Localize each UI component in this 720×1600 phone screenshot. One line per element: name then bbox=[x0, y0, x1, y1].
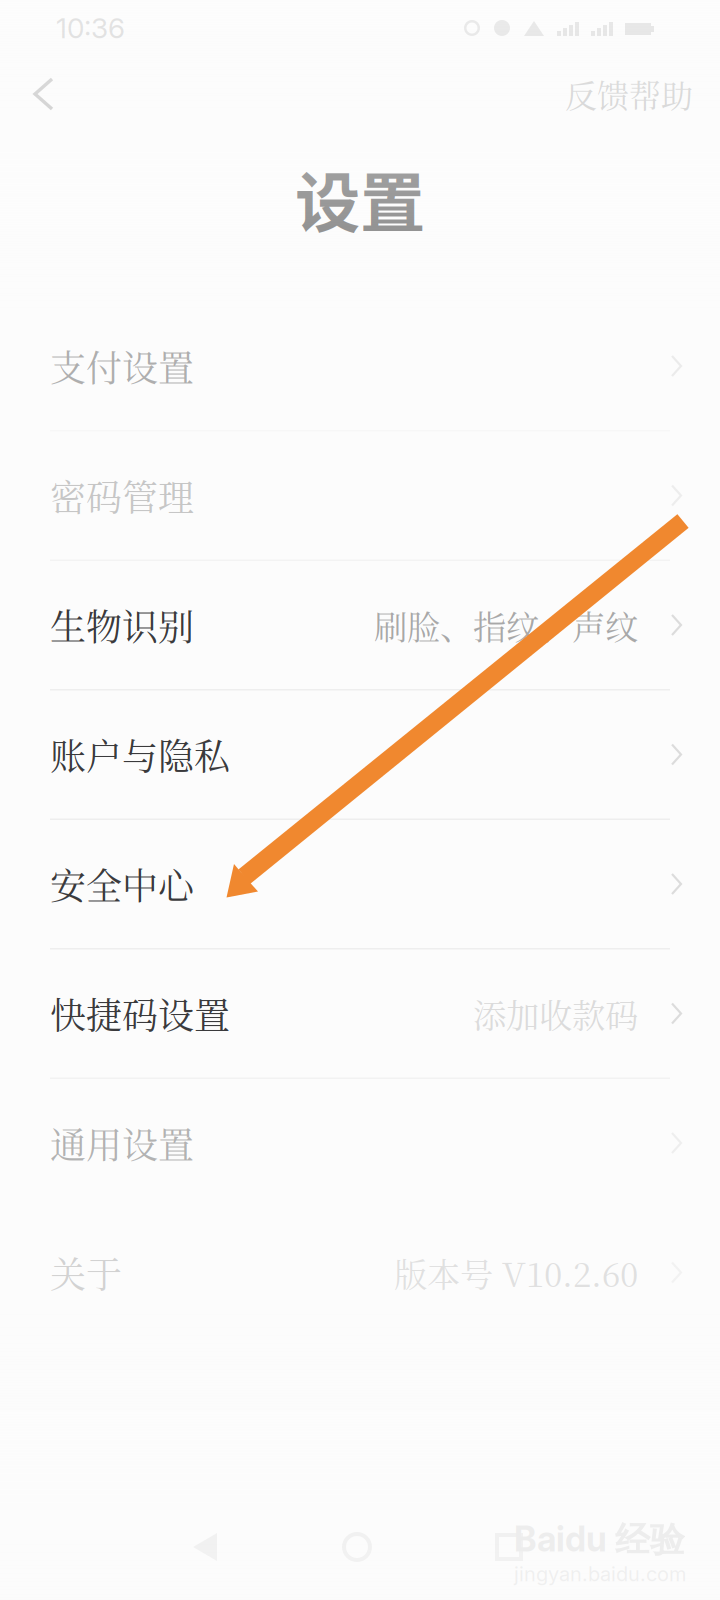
button[interactable]: Recent apps bbox=[459, 1512, 559, 1582]
staticText: 版本号 V10.2.60 bbox=[394, 1249, 638, 1296]
staticText: 10:36 bbox=[56, 11, 125, 45]
staticText: 生物识别 bbox=[50, 599, 194, 651]
staticText: 设置 bbox=[295, 151, 425, 245]
staticText: Baidu 经验 bbox=[514, 1518, 685, 1562]
staticText: jingyan.baidu.com bbox=[514, 1562, 686, 1586]
staticText: 账户与隐私 bbox=[50, 729, 230, 780]
staticText: 关于 bbox=[50, 1247, 122, 1298]
button[interactable]: 关于 bbox=[0, 1208, 720, 1338]
button[interactable]: 快捷码设置 bbox=[0, 949, 720, 1079]
button[interactable]: 反馈帮助 bbox=[565, 56, 720, 132]
staticText: 快捷码设置 bbox=[50, 988, 230, 1039]
staticText: 添加收款码 bbox=[473, 990, 638, 1037]
button[interactable]: 生物识别 bbox=[0, 561, 720, 690]
button[interactable]: Back bbox=[0, 56, 83, 132]
staticText: 支付设置 bbox=[50, 340, 194, 392]
staticText: 刷脸、指纹、声纹 bbox=[374, 601, 638, 649]
staticText: 反馈帮助 bbox=[565, 71, 693, 117]
button[interactable]: 账户与隐私 bbox=[0, 690, 720, 820]
staticText: 通用设置 bbox=[50, 1117, 194, 1169]
button[interactable]: 密码管理 bbox=[0, 431, 720, 561]
staticText: 安全中心 bbox=[50, 858, 194, 910]
button[interactable]: 支付设置 bbox=[0, 302, 720, 431]
button[interactable]: 通用设置 bbox=[0, 1079, 720, 1208]
button[interactable]: 安全中心 bbox=[0, 820, 720, 949]
staticText: 密码管理 bbox=[50, 470, 194, 521]
